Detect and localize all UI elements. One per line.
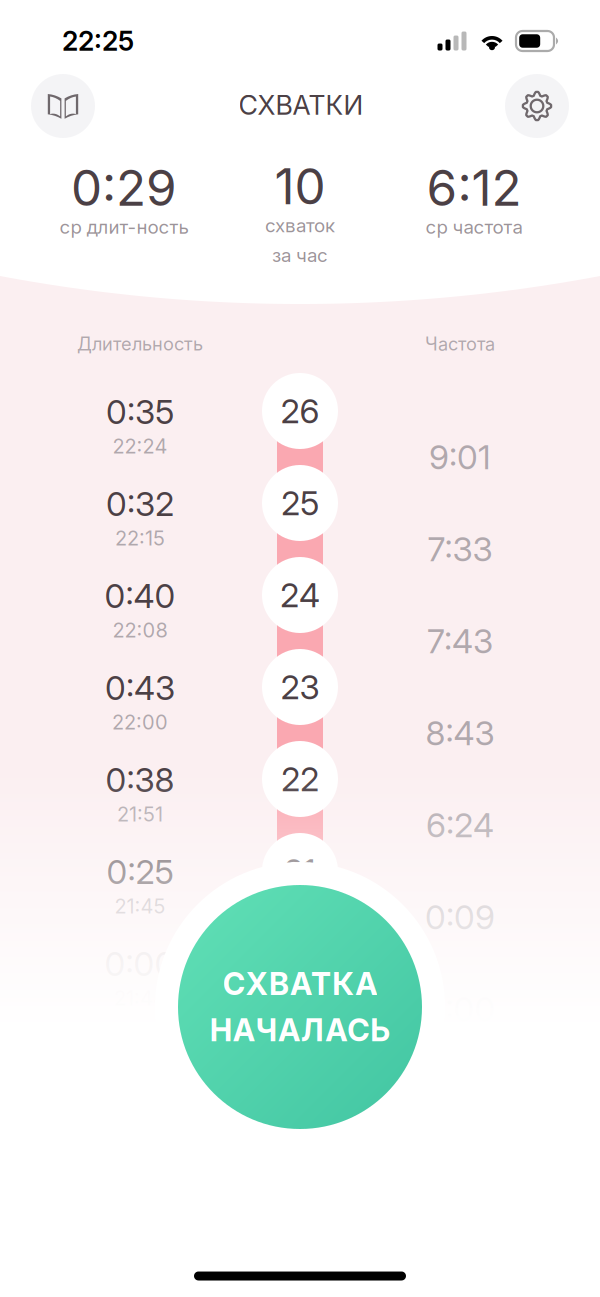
staticText: 7:43 — [427, 621, 493, 661]
staticText: НАЧАЛАСЬ — [210, 1011, 390, 1049]
staticText: 10 — [274, 157, 325, 216]
staticText: 25 — [281, 483, 319, 523]
staticText: Частота — [425, 333, 495, 355]
staticText: 0:00 — [104, 944, 175, 984]
staticText: 0:40 — [104, 576, 175, 616]
staticText: 7:33 — [427, 529, 492, 569]
staticText: 9:01 — [429, 437, 491, 477]
staticText: 22:15 — [115, 526, 165, 550]
staticText: 20 — [280, 943, 320, 983]
staticText: 0:35 — [106, 392, 174, 432]
staticText: за час — [272, 244, 328, 266]
staticText: 23 — [280, 667, 319, 707]
staticText: 8:43 — [425, 713, 494, 753]
staticText: 0:43 — [105, 668, 175, 708]
staticText: ср длит-ность — [59, 216, 188, 238]
staticText: 22 — [281, 759, 319, 799]
staticText: 0:25 — [106, 852, 173, 892]
staticText: 6:24 — [426, 805, 494, 845]
staticText: 0:09 — [425, 897, 495, 937]
staticText: 0:29 — [71, 158, 177, 218]
button[interactable]: Настройки — [505, 74, 569, 138]
staticText: 21:51 — [117, 802, 163, 826]
staticText: 22:24 — [112, 434, 167, 458]
staticText: 6:12 — [426, 158, 521, 218]
staticText: 21:45 — [114, 894, 165, 918]
staticText: СХВАТКА — [223, 965, 377, 1002]
staticText: 22:25 — [62, 25, 134, 57]
staticText: 0:38 — [105, 760, 174, 800]
staticText: схваток — [265, 214, 335, 237]
staticText: 22:08 — [112, 618, 167, 642]
button[interactable]: СХВАТКА — [178, 885, 422, 1129]
staticText: 0:32 — [106, 484, 174, 524]
button[interactable]: Журнал — [31, 74, 95, 138]
staticText: Длительность — [77, 333, 203, 355]
staticText: 24 — [280, 575, 320, 615]
staticText: 26 — [280, 391, 319, 431]
staticText: СХВАТКИ — [238, 89, 363, 121]
staticText: 21 — [284, 851, 316, 891]
staticText: ср частота — [425, 216, 522, 238]
staticText: 22:00 — [112, 710, 168, 734]
